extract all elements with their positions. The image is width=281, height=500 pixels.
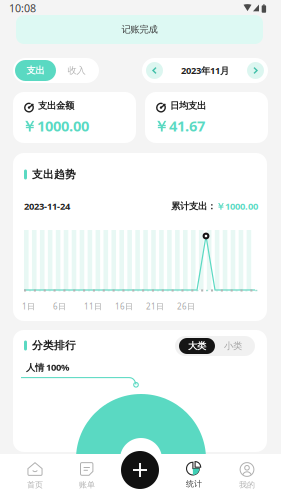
button[interactable]: 支出: [15, 60, 56, 81]
button[interactable]: 账单: [64, 458, 110, 498]
staticText: 我的: [239, 480, 255, 490]
staticText: 日均支出: [170, 100, 206, 111]
button[interactable]: 首页: [12, 458, 58, 498]
button[interactable]: Next month: [247, 62, 264, 79]
staticText: 6日: [53, 301, 66, 312]
staticText: 16日: [115, 301, 133, 312]
staticText: 支出: [26, 65, 44, 76]
staticText: 支出趋势: [32, 168, 76, 181]
staticText: 10:08: [9, 1, 36, 15]
button[interactable]: 小类: [215, 338, 251, 354]
staticText: 累计支出：: [171, 200, 216, 212]
staticText: 1日: [22, 301, 35, 312]
button[interactable]: 我的: [224, 458, 270, 498]
staticText: 人情 100%: [26, 361, 69, 373]
staticText: 收入: [67, 65, 85, 76]
staticText: 首页: [27, 480, 43, 490]
staticText: ￥1000.00: [22, 116, 89, 136]
button[interactable]: Previous month: [146, 62, 163, 79]
staticText: 分类排行: [32, 339, 76, 352]
staticText: ￥1000.00: [216, 200, 258, 212]
staticText: 账单: [79, 480, 95, 490]
staticText: 26日: [177, 301, 195, 312]
staticText: 支出金额: [38, 100, 74, 111]
staticText: ￥41.67: [154, 116, 205, 136]
staticText: 2023-11-24: [24, 200, 70, 212]
button[interactable]: 大类: [179, 338, 215, 354]
staticText: 统计: [186, 479, 202, 489]
button[interactable]: 收入: [56, 60, 97, 81]
staticText: 记账完成: [121, 24, 157, 35]
staticText: 11日: [84, 301, 102, 312]
staticText: 小类: [224, 340, 242, 352]
staticText: 21日: [146, 301, 164, 312]
staticText: 大类: [188, 340, 206, 352]
button[interactable]: Add record: [121, 451, 159, 489]
button[interactable]: 统计: [171, 457, 217, 497]
staticText: 2023年11月: [181, 64, 229, 77]
